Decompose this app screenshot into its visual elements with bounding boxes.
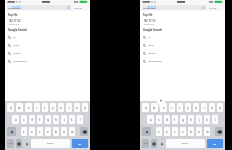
staticText: nilogen javita	[148, 60, 162, 63]
button[interactable]: nils	[142, 5, 206, 10]
button[interactable]: t	[42, 103, 48, 112]
button[interactable]: i	[201, 103, 207, 112]
button[interactable]: c	[37, 127, 43, 136]
button[interactable]: f	[172, 115, 178, 124]
staticText: g	[47, 118, 49, 122]
button[interactable]: s	[156, 115, 162, 124]
button[interactable]: e	[160, 103, 167, 112]
button[interactable]: c	[172, 127, 178, 136]
staticText: u	[195, 106, 197, 110]
button[interactable]: Switch keyboard	[16, 139, 22, 148]
button[interactable]: k	[204, 115, 210, 124]
button[interactable]: u	[58, 103, 64, 112]
staticText: l	[80, 118, 81, 122]
button[interactable]: x	[29, 127, 35, 136]
button[interactable]: Backspace	[80, 127, 88, 136]
button[interactable]: Shift	[142, 127, 151, 136]
button[interactable]: v	[180, 127, 186, 136]
button[interactable]: Cancel	[208, 6, 218, 9]
button[interactable]: j	[196, 115, 202, 124]
button[interactable]: Go	[72, 139, 88, 148]
button[interactable]: o	[209, 103, 215, 112]
button[interactable]: i	[66, 103, 72, 112]
button[interactable]: p	[217, 103, 223, 112]
button[interactable]: Switch keyboard	[151, 139, 157, 148]
staticText: j	[64, 118, 65, 122]
button[interactable]: h	[188, 115, 194, 124]
button[interactable]: n	[196, 127, 202, 136]
button[interactable]: Clear text	[202, 6, 205, 9]
button[interactable]: Go	[207, 139, 223, 148]
button[interactable]: nilogen javita	[140, 57, 225, 65]
button[interactable]: a	[147, 115, 154, 124]
button[interactable]: r	[169, 103, 175, 112]
button[interactable]: nilsalve	[5, 49, 90, 57]
button[interactable]: r	[34, 103, 40, 112]
button[interactable]: y	[185, 103, 191, 112]
button[interactable]: nil	[5, 33, 90, 41]
button[interactable]: b	[188, 127, 194, 136]
button[interactable]: Clear text	[67, 6, 70, 9]
button[interactable]: nilsen	[140, 41, 225, 49]
staticText: space	[47, 142, 54, 145]
button[interactable]: Shift	[7, 127, 16, 136]
button[interactable]: e	[25, 103, 32, 112]
button[interactable]: nil	[140, 33, 225, 41]
staticText: f	[39, 118, 41, 122]
button[interactable]: m	[204, 127, 210, 136]
button[interactable]: j	[61, 115, 67, 124]
button[interactable]: u	[193, 103, 199, 112]
button[interactable]: z	[21, 127, 27, 136]
button[interactable]: Backspace	[215, 127, 223, 136]
button[interactable]: space	[31, 139, 70, 148]
staticText: g	[182, 118, 184, 122]
button[interactable]: a	[12, 115, 19, 124]
button[interactable]: NILTITLE	[140, 17, 225, 26]
button[interactable]: space	[166, 139, 205, 148]
button[interactable]: g	[180, 115, 186, 124]
button[interactable]: nilsalve	[140, 49, 225, 57]
button[interactable]: 123	[142, 139, 149, 148]
staticText: w	[153, 106, 156, 110]
button[interactable]: l	[212, 115, 218, 124]
button[interactable]: t	[177, 103, 183, 112]
staticText: b	[55, 130, 57, 134]
button[interactable]: x	[164, 127, 170, 136]
button[interactable]: p	[82, 103, 88, 112]
button[interactable]: d	[29, 115, 35, 124]
button[interactable]: nils	[7, 5, 71, 10]
button[interactable]: f	[37, 115, 43, 124]
button[interactable]: w	[151, 103, 158, 112]
button[interactable]: y	[50, 103, 56, 112]
staticText: e	[163, 106, 165, 110]
button[interactable]: m	[69, 127, 75, 136]
button[interactable]: d	[164, 115, 170, 124]
button[interactable]: o	[74, 103, 80, 112]
staticText: a	[15, 118, 17, 122]
staticText: a	[150, 118, 152, 122]
button[interactable]: 123	[7, 139, 14, 148]
button[interactable]: nilogen javita	[5, 57, 90, 65]
button[interactable]: n	[61, 127, 67, 136]
staticText: 123	[144, 142, 148, 145]
button[interactable]: NILTITLE	[5, 17, 90, 26]
staticText: q	[145, 106, 147, 110]
button[interactable]: s	[21, 115, 27, 124]
button[interactable]: Dictate	[159, 139, 164, 148]
staticText: t	[179, 106, 181, 110]
button[interactable]: Dictate	[24, 139, 29, 148]
staticText: v	[182, 130, 184, 134]
button[interactable]: nilsen	[5, 41, 90, 49]
button[interactable]: l	[77, 115, 83, 124]
button[interactable]: v	[45, 127, 51, 136]
button[interactable]: h	[53, 115, 59, 124]
button[interactable]: b	[53, 127, 59, 136]
button[interactable]: w	[16, 103, 23, 112]
button[interactable]: z	[156, 127, 162, 136]
button[interactable]: q	[142, 103, 149, 112]
button[interactable]: q	[7, 103, 14, 112]
button[interactable]: Cancel	[73, 6, 83, 9]
button[interactable]: k	[69, 115, 75, 124]
staticText: j	[199, 118, 200, 122]
button[interactable]: g	[45, 115, 51, 124]
